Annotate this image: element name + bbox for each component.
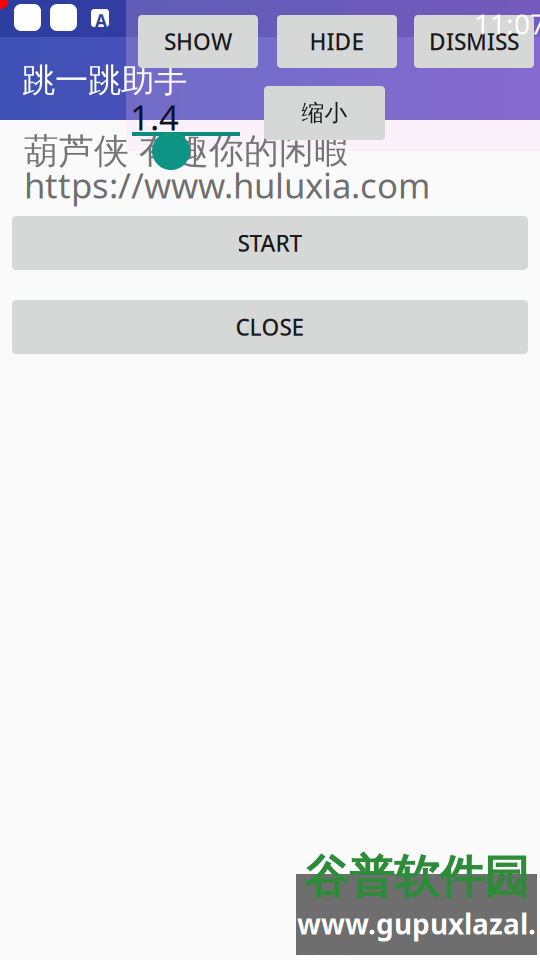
staticText: 谷普软件园 — [304, 849, 529, 905]
staticText: 11:07 — [474, 5, 540, 42]
button[interactable]: SHOW — [138, 15, 258, 68]
button[interactable]: HIDE — [277, 15, 397, 68]
staticText: A — [95, 9, 107, 32]
button[interactable]: DISMISS — [414, 15, 534, 68]
staticText: 跳一跳助手 — [22, 60, 187, 101]
staticText: HIDE — [309, 26, 364, 56]
staticText: 1.4 — [130, 94, 179, 140]
staticText: DISMISS — [429, 26, 519, 56]
staticText: https://www.huluxia.com — [24, 162, 430, 208]
staticText: www.gupuxlazal.com — [297, 905, 536, 960]
button[interactable]: 缩小 — [264, 86, 385, 140]
staticText: SHOW — [164, 26, 232, 56]
button[interactable]: START — [12, 216, 528, 270]
staticText: START — [237, 228, 302, 258]
staticText: CLOSE — [235, 312, 304, 342]
staticText: 缩小 — [301, 99, 347, 127]
staticText: 葫芦侠 有趣你的闲暇 — [24, 130, 349, 173]
button[interactable]: CLOSE — [12, 300, 528, 354]
